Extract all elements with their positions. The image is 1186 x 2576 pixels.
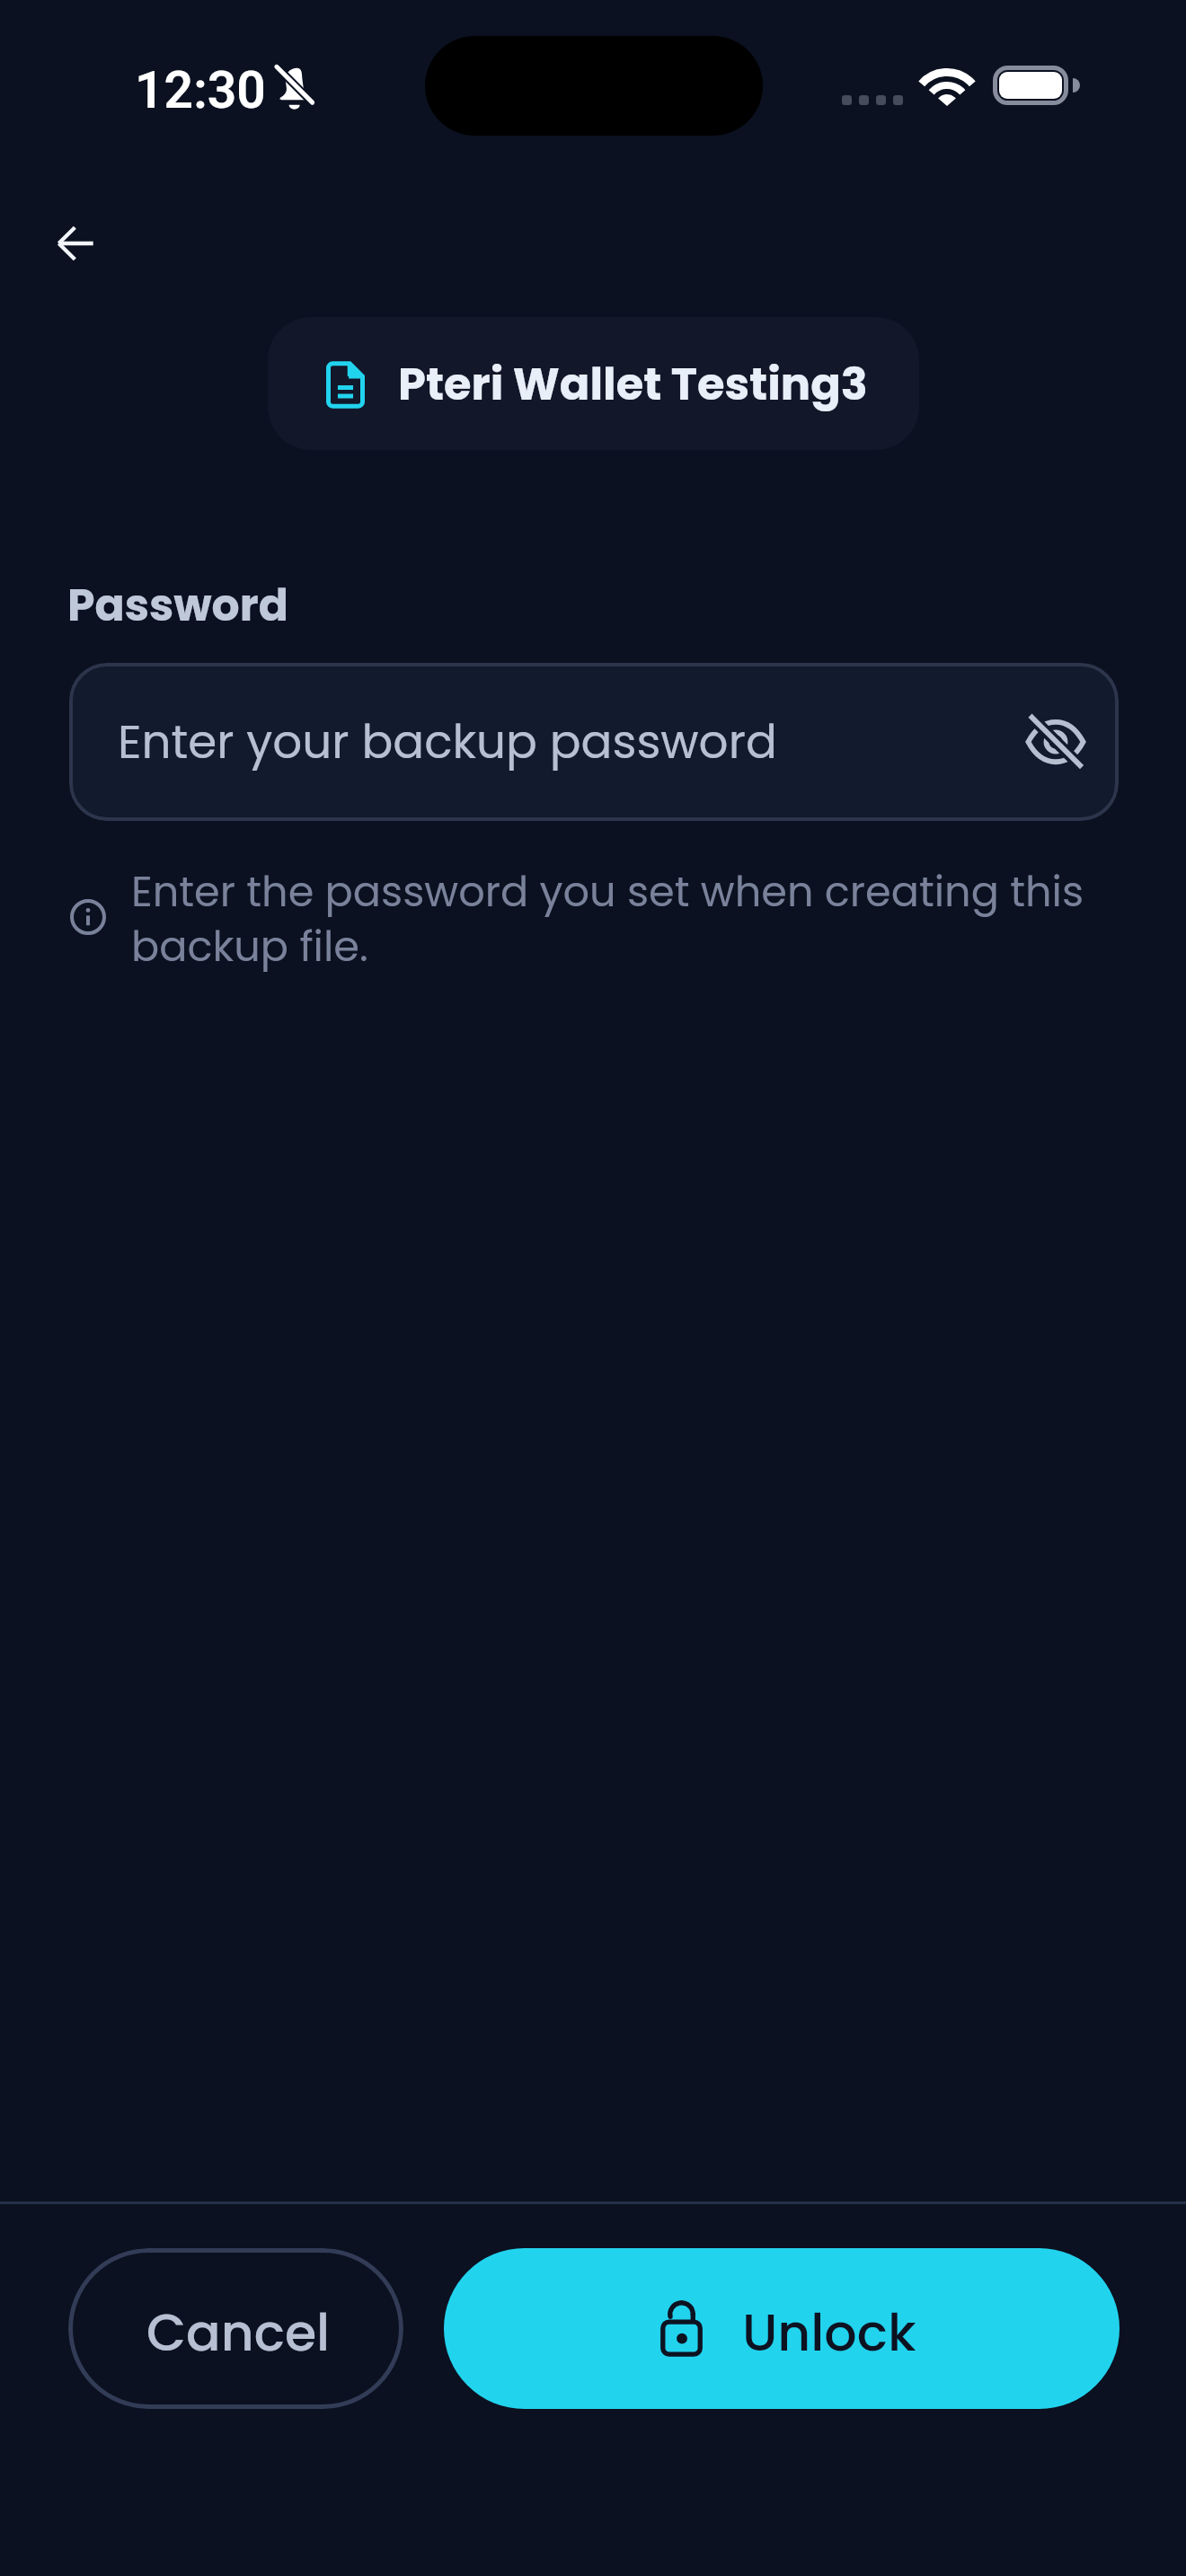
button[interactable]: Enter your backup password [69, 663, 1119, 821]
button[interactable]: Pteri Wallet Testing3 [268, 317, 919, 450]
staticText: Pteri Wallet Testing3 [398, 353, 868, 415]
staticText: Enter your backup password [118, 710, 1023, 774]
staticText: Unlock [742, 2297, 916, 2369]
button[interactable]: Show password [1023, 710, 1088, 774]
staticText: Password [67, 575, 288, 636]
staticText: 12:30 [135, 60, 266, 120]
button[interactable]: Unlock [444, 2248, 1120, 2409]
staticText: Enter the password you set when creating… [131, 862, 1142, 975]
button[interactable]: Back [43, 211, 108, 276]
staticText: Cancel [146, 2297, 331, 2369]
button[interactable]: Cancel [68, 2248, 403, 2409]
